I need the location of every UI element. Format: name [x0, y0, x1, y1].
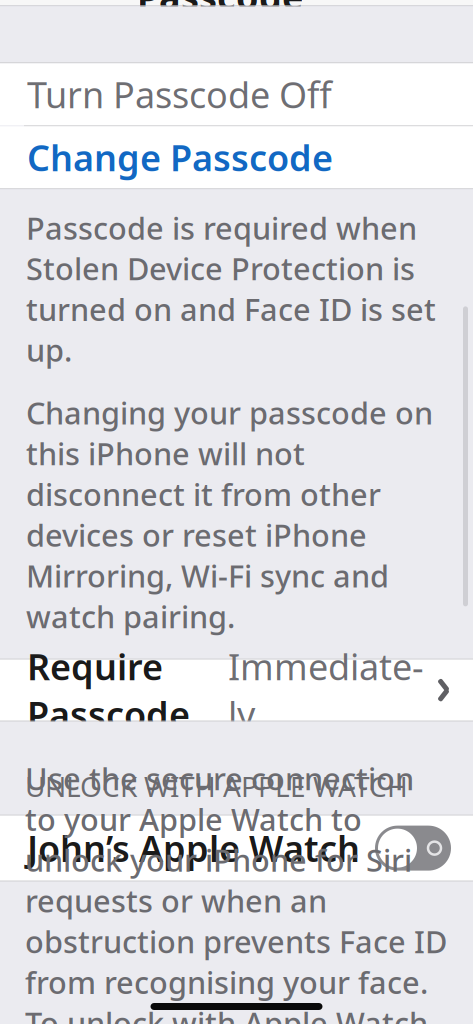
- staticText: Use the secure connection to your Apple …: [25, 758, 447, 1024]
- staticText: John’s Apple Watch: [27, 824, 360, 872]
- button[interactable]: Change Passcode: [0, 126, 473, 188]
- button[interactable]: John’s Apple Watch: [0, 816, 473, 881]
- staticText: Immediately: [228, 642, 424, 738]
- staticText: UNLOCK WITH APPLE WATCH: [25, 767, 408, 805]
- staticText: Require Passcode: [27, 642, 190, 738]
- staticText: Changing your passcode on this iPhone wi…: [26, 392, 433, 637]
- staticText: Change Passcode: [27, 133, 333, 181]
- button[interactable]: Require Passcode: [0, 660, 473, 721]
- button[interactable]: Turn Passcode Off: [0, 63, 473, 125]
- staticText: Turn Passcode Off: [27, 70, 332, 118]
- staticText: Face ID & Passcode: [137, 0, 304, 20]
- staticText: Passcode is required when Stolen Device …: [26, 207, 436, 370]
